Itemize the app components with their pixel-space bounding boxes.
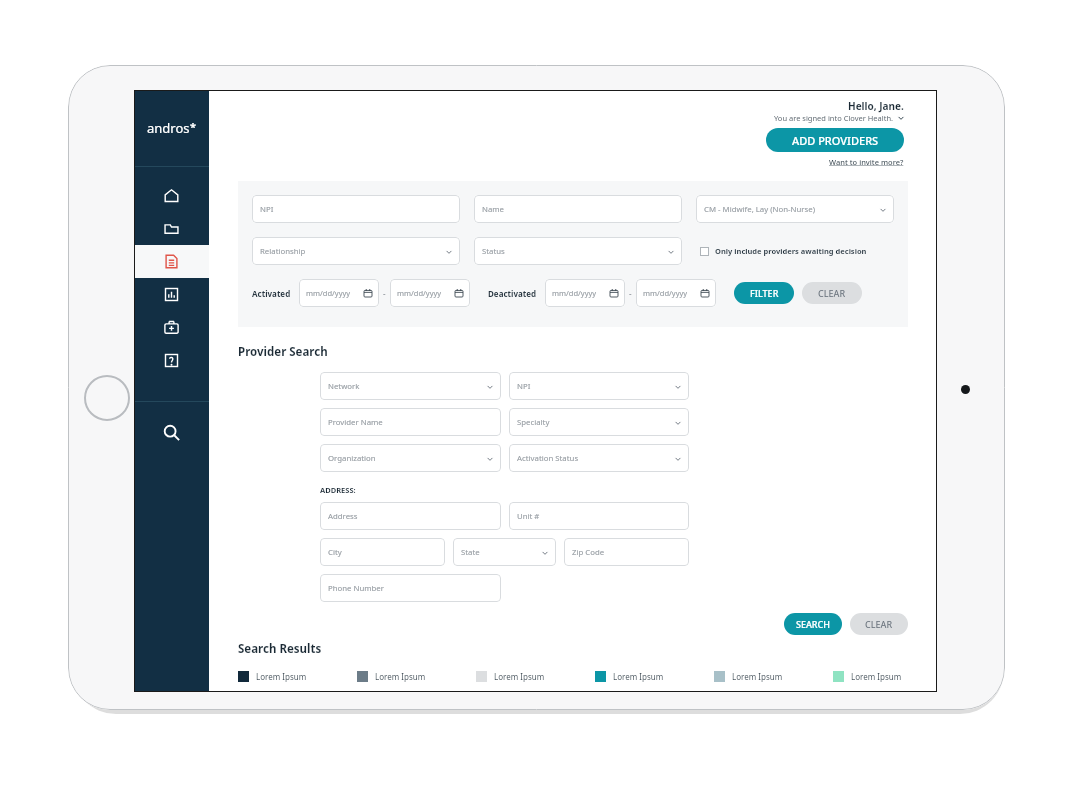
staticText: Activation Status — [517, 453, 579, 464]
staticText: Lorem Ipsum — [613, 671, 664, 682]
staticText: SEARCH — [796, 618, 830, 630]
button[interactable]: mm/dd/yyyy — [636, 279, 716, 307]
staticText: Lorem Ipsum — [375, 671, 426, 682]
button[interactable]: City — [320, 538, 445, 566]
button[interactable]: Home — [84, 375, 130, 421]
staticText: Zip Code — [572, 547, 605, 558]
button[interactable]: Activation Status — [509, 444, 689, 472]
button[interactable]: Lorem Ipsum — [833, 671, 908, 682]
staticText: Status — [482, 246, 505, 257]
staticText: Search Results — [238, 641, 322, 657]
button[interactable]: FILTER — [734, 282, 794, 304]
button[interactable]: CM - Midwife, Lay (Non-Nurse) — [696, 195, 894, 223]
button[interactable]: State — [453, 538, 556, 566]
button[interactable]: Lorem Ipsum — [595, 671, 714, 682]
button[interactable]: mm/dd/yyyy — [390, 279, 470, 307]
staticText: Network — [328, 381, 360, 392]
button[interactable]: Navigation item — [134, 179, 209, 212]
button[interactable]: Status — [474, 237, 682, 265]
staticText: State — [461, 547, 480, 558]
staticText: You are signed into Clover Health. — [774, 113, 894, 123]
button[interactable]: CLEAR — [802, 282, 862, 304]
button[interactable]: NPI — [252, 195, 460, 223]
staticText: Relationship — [260, 246, 306, 257]
staticText: Provider Search — [238, 344, 328, 360]
staticText: FILTER — [750, 287, 779, 299]
staticText: Organization — [328, 453, 376, 464]
staticText: - — [629, 288, 632, 299]
button[interactable]: Phone Number — [320, 574, 501, 602]
button[interactable]: Lorem Ipsum — [476, 671, 595, 682]
staticText: mm/dd/yyyy — [397, 288, 442, 298]
staticText: Lorem Ipsum — [732, 671, 783, 682]
staticText: City — [328, 547, 342, 558]
staticText: NPI — [260, 204, 274, 215]
button[interactable]: Navigation item — [134, 344, 209, 377]
staticText: NPI — [517, 381, 531, 392]
staticText: Lorem Ipsum — [494, 671, 545, 682]
staticText: Specialty — [517, 417, 550, 428]
staticText: mm/dd/yyyy — [643, 288, 688, 298]
staticText: ADDRESS: — [320, 485, 356, 495]
staticText: Activated — [252, 288, 291, 299]
staticText: Deactivated — [488, 288, 537, 299]
staticText: * — [190, 119, 196, 134]
staticText: Lorem Ipsum — [256, 671, 307, 682]
button[interactable]: Navigation item — [134, 245, 209, 278]
staticText: mm/dd/yyyy — [306, 288, 351, 298]
button[interactable]: ADD PROVIDERS — [766, 128, 904, 152]
button[interactable]: Name — [474, 195, 682, 223]
staticText: Lorem Ipsum — [851, 671, 902, 682]
button[interactable]: Provider Name — [320, 408, 501, 436]
staticText: ADD PROVIDERS — [792, 133, 879, 148]
staticText: Provider Name — [328, 417, 383, 428]
button[interactable]: Lorem Ipsum — [238, 671, 357, 682]
staticText: - — [383, 288, 386, 299]
staticText: andros — [147, 119, 190, 137]
button[interactable]: mm/dd/yyyy — [299, 279, 379, 307]
staticText: Phone Number — [328, 583, 384, 594]
button[interactable]: Relationship — [252, 237, 460, 265]
staticText: Want to invite more? — [829, 157, 904, 167]
staticText: Unit # — [517, 511, 540, 522]
staticText: CLEAR — [865, 618, 893, 630]
staticText: Hello, Jane. — [848, 99, 904, 113]
button[interactable]: Zip Code — [564, 538, 689, 566]
staticText: CLEAR — [818, 287, 846, 299]
button[interactable]: Organization — [320, 444, 501, 472]
button[interactable]: Navigation item — [134, 278, 209, 311]
staticText: CM - Midwife, Lay (Non-Nurse) — [704, 204, 815, 215]
button[interactable]: Navigation item — [134, 212, 209, 245]
button[interactable]: Lorem Ipsum — [714, 671, 833, 682]
button[interactable]: NPI — [509, 372, 689, 400]
button[interactable]: Specialty — [509, 408, 689, 436]
staticText: mm/dd/yyyy — [552, 288, 597, 298]
button[interactable]: Network — [320, 372, 501, 400]
button[interactable]: Navigation item — [134, 311, 209, 344]
button[interactable]: Search — [134, 402, 209, 462]
button[interactable]: Lorem Ipsum — [357, 671, 476, 682]
button[interactable]: SEARCH — [784, 613, 842, 635]
staticText: Name — [482, 204, 504, 215]
button[interactable]: mm/dd/yyyy — [545, 279, 625, 307]
button[interactable]: Address — [320, 502, 501, 530]
button[interactable]: CLEAR — [850, 613, 908, 635]
button[interactable]: Want to invite more? — [829, 157, 904, 167]
staticText: Only include providers awaiting decision — [715, 246, 867, 256]
button[interactable]: Unit # — [509, 502, 689, 530]
staticText: Address — [328, 511, 358, 522]
